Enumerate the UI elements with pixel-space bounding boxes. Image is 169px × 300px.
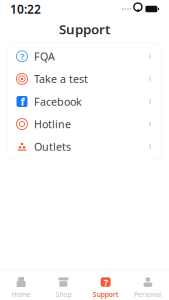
staticText: Hotline: [34, 117, 71, 131]
button[interactable]: ?: [7, 45, 162, 68]
staticText: Home: [12, 290, 31, 299]
staticText: Take a test: [34, 72, 88, 86]
staticText: Outlets: [34, 140, 71, 154]
staticText: f: [20, 94, 24, 109]
button[interactable]: ?: [84, 276, 127, 299]
button[interactable]: Outlets: [7, 135, 162, 158]
button[interactable]: Home: [0, 276, 42, 299]
button[interactable]: Personal: [127, 276, 169, 299]
button[interactable]: f: [7, 90, 162, 113]
staticText: 10:22: [10, 1, 41, 17]
button[interactable]: Shop: [42, 276, 84, 299]
staticText: ?: [104, 276, 108, 288]
button[interactable]: Hotline: [7, 113, 162, 135]
staticText: Personal: [134, 290, 162, 299]
staticText: Facebook: [34, 94, 82, 109]
staticText: FQA: [34, 49, 55, 63]
button[interactable]: Take a test: [7, 68, 162, 90]
staticText: Shop: [55, 290, 71, 299]
staticText: ?: [20, 50, 24, 62]
staticText: Support: [59, 20, 110, 38]
staticText: Support: [93, 290, 119, 299]
